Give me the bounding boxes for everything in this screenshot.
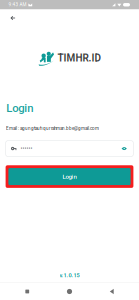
staticText: Login <box>62 173 76 180</box>
staticText: •••••• <box>20 145 32 152</box>
staticText: TIMHR.ID <box>58 52 101 64</box>
staticText: v.1.0.15 <box>59 272 79 278</box>
staticText: Email : agungtaufiqurrahman.bbe@gmail.co… <box>6 126 99 131</box>
button[interactable]: Login <box>6 165 133 188</box>
button[interactable]: Home <box>54 283 84 299</box>
staticText: 9:43 AM <box>9 2 27 7</box>
button[interactable]: Back <box>97 283 127 299</box>
button[interactable]: Navigate up <box>5 9 21 26</box>
staticText: Login <box>6 101 33 115</box>
button[interactable]: Recent apps <box>12 283 42 299</box>
